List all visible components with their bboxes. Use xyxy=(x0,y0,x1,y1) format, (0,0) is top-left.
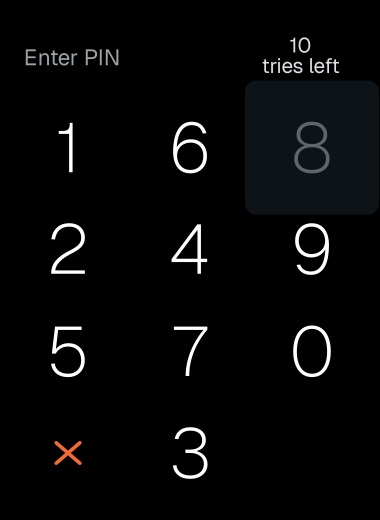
button[interactable]: 8 xyxy=(245,80,379,214)
button[interactable]: 6 xyxy=(129,96,251,198)
button[interactable]: 7 xyxy=(129,300,251,402)
staticText: tries left xyxy=(261,52,339,79)
button[interactable]: 0 xyxy=(251,300,373,402)
staticText: Enter PIN xyxy=(24,43,121,72)
staticText: 10 xyxy=(289,31,311,59)
button[interactable]: 3 xyxy=(129,402,251,504)
button[interactable]: 9 xyxy=(251,198,373,300)
staticText: 4 xyxy=(169,204,211,294)
button[interactable]: 5 xyxy=(7,300,129,402)
staticText: 6 xyxy=(168,102,211,193)
staticText: 8 xyxy=(291,102,333,193)
staticText: 0 xyxy=(289,306,334,397)
staticText: 7 xyxy=(172,306,207,397)
staticText: 2 xyxy=(46,204,89,294)
staticText: 9 xyxy=(290,204,333,294)
button[interactable]: Delete xyxy=(7,402,129,504)
staticText: 5 xyxy=(46,306,89,397)
staticText: 3 xyxy=(169,408,211,498)
staticText: 1 xyxy=(55,102,80,193)
button[interactable]: 1 xyxy=(7,96,129,198)
button[interactable]: 4 xyxy=(129,198,251,300)
button[interactable]: 2 xyxy=(7,198,129,300)
